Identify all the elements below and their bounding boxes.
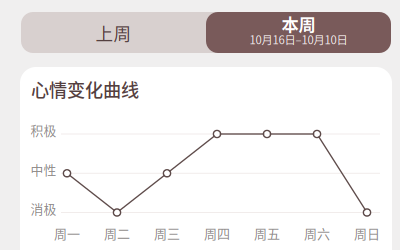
staticText: 消极 — [30, 199, 56, 218]
staticText: 周四 — [204, 223, 230, 242]
staticText: 积极 — [30, 121, 56, 139]
staticText: 周二 — [104, 223, 130, 242]
staticText: 周日 — [354, 223, 380, 242]
staticText: 中性 — [30, 160, 56, 178]
staticText: 周一 — [54, 223, 80, 242]
staticText: 上周 — [95, 20, 131, 45]
button[interactable]: 上周 — [21, 12, 206, 53]
staticText: 周五 — [254, 223, 280, 242]
staticText: 周六 — [304, 223, 330, 242]
staticText: 心情变化曲线 — [31, 76, 139, 102]
button[interactable]: 本周 — [206, 12, 391, 53]
staticText: 本周 — [281, 11, 315, 36]
staticText: 周三 — [154, 223, 180, 242]
staticText: 10月16日–10月10日 — [249, 31, 347, 47]
